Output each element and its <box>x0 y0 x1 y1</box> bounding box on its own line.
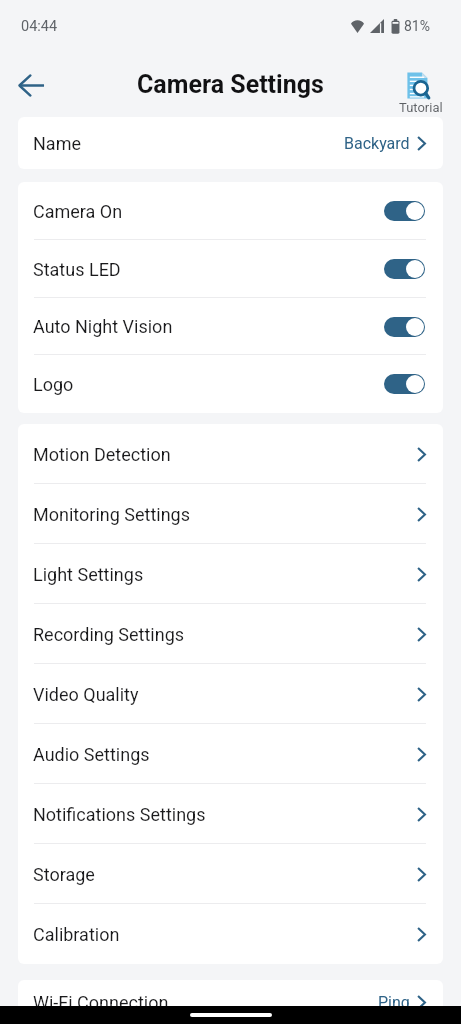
staticText: Camera Settings <box>137 70 324 99</box>
button[interactable]: Notifications Settings <box>18 784 443 844</box>
button[interactable]: Logo <box>18 355 443 413</box>
button[interactable]: Toggle Status LED <box>384 259 425 279</box>
button[interactable]: Monitoring Settings <box>18 484 443 544</box>
button[interactable]: Auto Night Vision <box>18 298 443 355</box>
button[interactable]: Toggle Camera On <box>384 201 425 221</box>
button[interactable]: Tutorial <box>399 71 443 115</box>
button[interactable]: Status LED <box>18 240 443 298</box>
button[interactable]: Storage <box>18 844 443 904</box>
button[interactable]: Recording Settings <box>18 604 443 664</box>
staticText: Storage <box>33 864 95 885</box>
button[interactable]: Motion Detection <box>18 424 443 484</box>
staticText: Name <box>33 133 81 154</box>
button[interactable]: Audio Settings <box>18 724 443 784</box>
button[interactable]: Light Settings <box>18 544 443 604</box>
staticText: Auto Night Vision <box>33 316 173 337</box>
staticText: Backyard <box>344 134 410 153</box>
button[interactable]: Name <box>18 117 443 169</box>
staticText: Logo <box>33 374 74 395</box>
staticText: Recording Settings <box>33 624 185 645</box>
button[interactable]: Camera On <box>18 182 443 240</box>
staticText: Camera On <box>33 201 123 222</box>
staticText: Video Quality <box>33 684 139 705</box>
button[interactable]: Wi-Fi Connection <box>18 980 443 1024</box>
staticText: Notifications Settings <box>33 804 206 825</box>
staticText: Audio Settings <box>33 744 150 765</box>
staticText: Light Settings <box>33 564 144 585</box>
button[interactable]: Video Quality <box>18 664 443 724</box>
staticText: Calibration <box>33 924 120 945</box>
button[interactable]: Calibration <box>18 904 443 964</box>
button[interactable]: Toggle Auto Night Vision <box>384 317 425 337</box>
staticText: Motion Detection <box>33 444 171 465</box>
staticText: Ping <box>378 993 410 1012</box>
button[interactable]: Back <box>11 65 51 105</box>
staticText: 04:44 <box>21 18 58 35</box>
button[interactable]: Toggle Logo <box>384 374 425 394</box>
staticText: Wi-Fi Connection <box>33 992 169 1013</box>
staticText: Status LED <box>33 259 121 280</box>
staticText: 81% <box>404 18 430 34</box>
staticText: Tutorial <box>399 100 443 115</box>
staticText: Monitoring Settings <box>33 504 190 525</box>
